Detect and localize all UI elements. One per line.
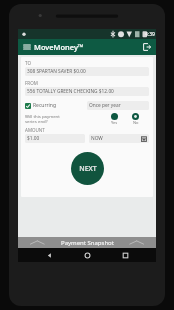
staticText: NOW xyxy=(91,135,103,142)
button[interactable]: 556 TOTALLY GREEN CHECKING $12.00 xyxy=(25,87,149,96)
staticText: AMOUNT xyxy=(25,127,45,133)
staticText: 556 TOTALLY GREEN CHECKING $12.00 xyxy=(27,88,114,95)
button[interactable]: Yes xyxy=(111,113,118,125)
button[interactable]: Recurring xyxy=(25,102,87,109)
button[interactable]: Back xyxy=(42,248,56,262)
button[interactable]: $1.00 xyxy=(25,134,85,143)
staticText: FROM xyxy=(25,80,38,86)
button[interactable]: NOW xyxy=(89,134,149,143)
staticText: Will this payment series end? xyxy=(25,113,69,124)
staticText: TO xyxy=(25,60,31,66)
button[interactable]: Home xyxy=(80,248,94,262)
staticText: Payment Snapshot xyxy=(61,239,114,247)
button[interactable]: Payment Snapshot xyxy=(18,237,156,248)
button[interactable]: NEXT xyxy=(71,152,104,185)
staticText: MoveMoney™ xyxy=(34,42,84,52)
staticText: NEXT xyxy=(79,164,97,174)
staticText: No xyxy=(133,120,139,125)
button[interactable]: Once per year xyxy=(87,101,149,110)
staticText: Recurring xyxy=(33,102,57,109)
button[interactable]: Recent apps xyxy=(118,248,132,262)
staticText: 308 SPARTAN SAVER $0.00 xyxy=(27,68,86,75)
button[interactable]: 308 SPARTAN SAVER $0.00 xyxy=(25,67,149,76)
button[interactable]: Log out xyxy=(141,41,153,53)
staticText: Yes xyxy=(111,120,118,125)
button[interactable]: No xyxy=(132,113,139,125)
staticText: $1.00 xyxy=(27,135,40,142)
button[interactable]: Open navigation menu xyxy=(21,41,33,53)
staticText: 4:39 xyxy=(145,31,155,38)
staticText: Once per year xyxy=(89,102,121,109)
